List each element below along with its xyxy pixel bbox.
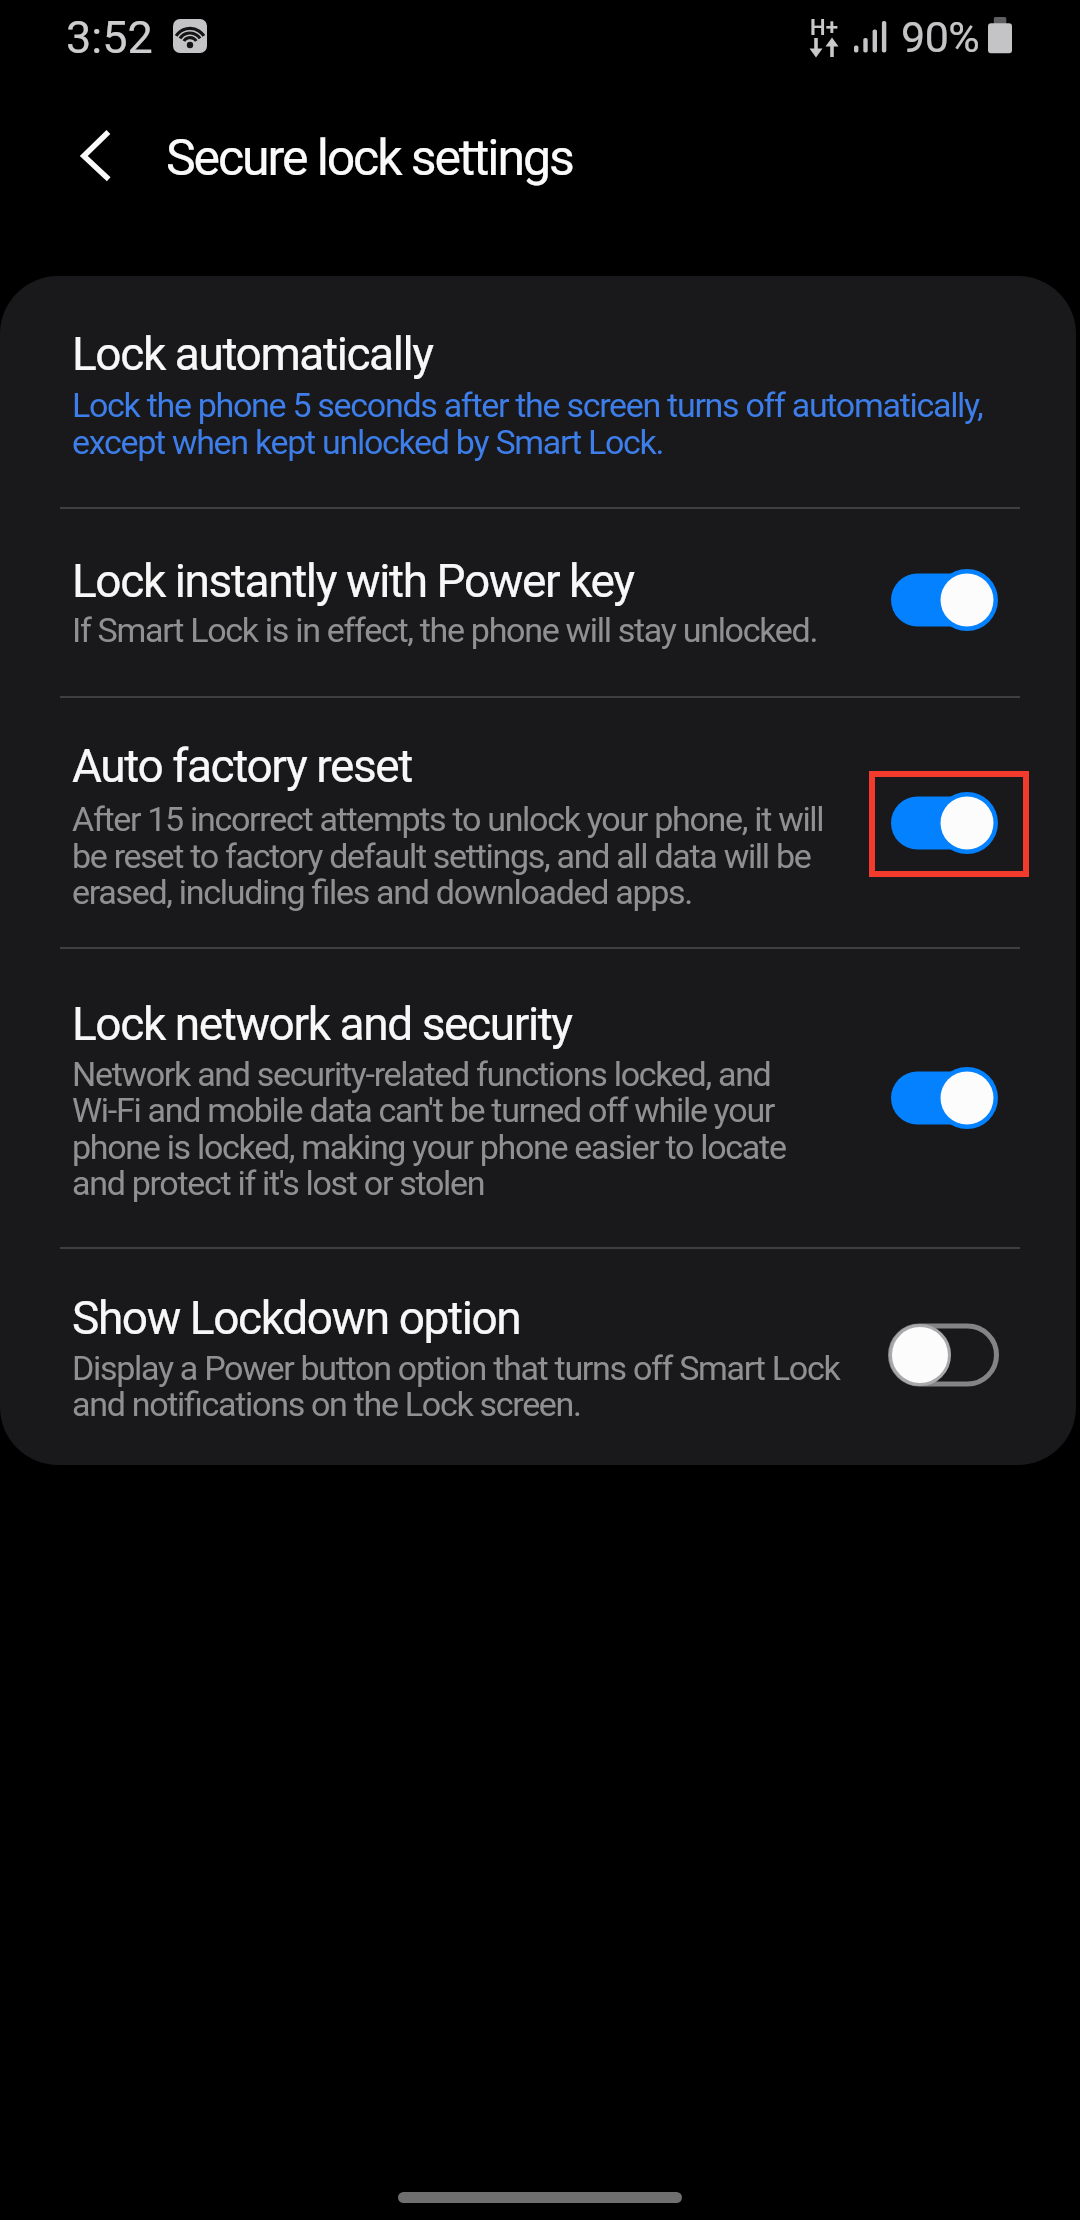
staticText: Lock the phone 5 seconds after the scree… bbox=[72, 385, 983, 425]
staticText: Display a Power button option that turns… bbox=[72, 1348, 840, 1388]
button[interactable] bbox=[888, 1323, 999, 1387]
staticText: Lock automatically bbox=[72, 327, 433, 381]
staticText: Network and security-related functions l… bbox=[72, 1054, 771, 1094]
button[interactable]: Show Lockdown option bbox=[0, 1249, 1076, 1465]
button[interactable]: Lock automatically bbox=[0, 277, 1076, 506]
staticText: Lock network and security bbox=[72, 997, 572, 1051]
staticText: and protect if it's lost or stolen bbox=[72, 1163, 485, 1203]
button[interactable] bbox=[891, 569, 998, 631]
staticText: Auto factory reset bbox=[72, 739, 412, 793]
staticText: Secure lock settings bbox=[166, 129, 573, 188]
staticText: If Smart Lock is in effect, the phone wi… bbox=[72, 610, 818, 650]
button[interactable] bbox=[891, 1067, 998, 1129]
staticText: 3:52 bbox=[66, 11, 153, 64]
staticText: except when kept unlocked by Smart Lock. bbox=[72, 422, 664, 462]
staticText: and notifications on the Lock screen. bbox=[72, 1384, 581, 1424]
staticText: Lock instantly with Power key bbox=[72, 554, 634, 608]
staticText: Show Lockdown option bbox=[72, 1291, 521, 1345]
button[interactable]: Lock network and security bbox=[0, 949, 1076, 1247]
staticText: Wi-Fi and mobile data can't be turned of… bbox=[72, 1090, 775, 1130]
staticText: H+ bbox=[810, 15, 838, 41]
staticText: After 15 incorrect attempts to unlock yo… bbox=[72, 799, 824, 839]
staticText: be reset to factory default settings, an… bbox=[72, 836, 811, 876]
button[interactable]: Auto factory reset bbox=[0, 698, 1076, 947]
staticText: 90% bbox=[901, 12, 980, 62]
button[interactable]: Lock instantly with Power key bbox=[0, 509, 1076, 696]
staticText: phone is locked, making your phone easie… bbox=[72, 1127, 786, 1167]
button[interactable] bbox=[891, 792, 998, 854]
staticText: erased, including files and downloaded a… bbox=[72, 872, 692, 912]
button[interactable] bbox=[60, 118, 132, 194]
